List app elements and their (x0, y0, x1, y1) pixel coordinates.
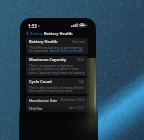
other: Status icons (71, 23, 88, 28)
staticText: Maximum Capacity (29, 57, 67, 62)
staticText: This is the number of times iPhone has u… (29, 85, 85, 93)
button[interactable]: Battery Health (26, 38, 88, 54)
staticText: Normal (72, 39, 85, 44)
staticText: Manufacture Date (29, 98, 58, 102)
staticText: 1:53 (28, 23, 37, 29)
staticText: This is a measure of battery capacity re… (29, 63, 85, 75)
staticText: 142 (78, 79, 85, 84)
button[interactable]: First Use (26, 104, 88, 112)
staticText: Battery (30, 31, 43, 36)
staticText: First Use (29, 106, 43, 110)
button[interactable]: Cycle Count (26, 78, 88, 94)
button[interactable]: Maximum Capacity (26, 56, 88, 76)
staticText: December 2023 (61, 98, 85, 102)
staticText: April 2024 (69, 106, 85, 110)
button[interactable]: Battery (26, 31, 43, 36)
staticText: 96% (77, 57, 85, 62)
staticText: Battery Health (44, 31, 73, 36)
staticText: This iPhone battery is performing as exp… (29, 45, 85, 53)
staticText: Battery Health (29, 39, 58, 44)
staticText: Cycle Count (29, 79, 52, 84)
button[interactable]: Manufacture Date (26, 96, 88, 104)
